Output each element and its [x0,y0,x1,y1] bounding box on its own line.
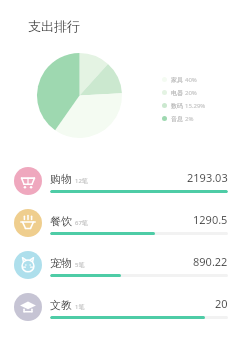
other: Dining [19,214,37,232]
staticText: 890.22 [193,254,228,269]
button[interactable]: Dining [0,202,240,244]
button[interactable]: Education [0,286,240,328]
staticText: 40% [185,76,197,84]
other: Pets [19,256,37,274]
staticText: 1290.5 [193,212,228,227]
staticText: 20 [215,296,228,311]
staticText: 支出排行 [28,18,80,34]
staticText: 音息 [171,115,183,123]
staticText: 20% [185,89,197,97]
button[interactable]: Shopping [0,160,240,202]
staticText: 家具 [171,76,183,84]
staticText: 文教 [50,298,72,312]
staticText: 电器 [171,89,183,97]
staticText: 12笔 [75,177,88,185]
staticText: 2193.03 [187,170,228,185]
button[interactable]: Pets [0,244,240,286]
staticText: 数码 [171,102,183,110]
staticText: 2% [185,115,194,123]
staticText: 餐饮 [50,214,72,228]
other: Education [19,298,37,316]
other: Shopping [19,172,37,190]
staticText: 宠物 [50,256,72,270]
staticText: 5笔 [75,261,85,269]
staticText: 1笔 [75,303,85,311]
staticText: 15.29% [185,102,206,110]
staticText: 67笔 [75,219,88,227]
staticText: 购物 [50,172,72,186]
